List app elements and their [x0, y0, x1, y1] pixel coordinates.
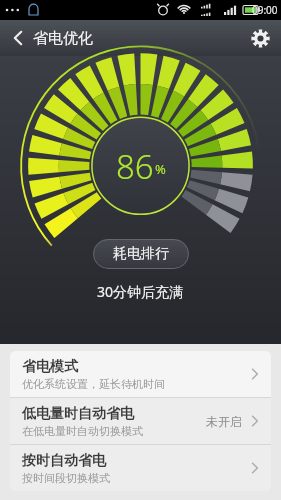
- staticText: 优化系统设置，延长待机时间: [22, 377, 165, 391]
- button[interactable]: 低电量时自动省电: [10, 398, 271, 444]
- staticText: 按时间段切换模式: [22, 471, 110, 485]
- staticText: 低电量时自动省电: [22, 405, 134, 423]
- staticText: 省电优化: [33, 29, 93, 48]
- staticText: 按时自动省电: [22, 452, 106, 470]
- staticText: 86: [116, 144, 154, 189]
- staticText: 耗电排行: [113, 245, 169, 263]
- staticText: 30分钟后充满: [97, 282, 184, 301]
- button[interactable]: 按时自动省电: [10, 445, 271, 491]
- staticText: 在低电量时自动切换模式: [22, 424, 143, 438]
- button[interactable]: Settings: [239, 20, 281, 56]
- staticText: 省电模式: [22, 358, 78, 376]
- button[interactable]: 耗电排行: [93, 239, 189, 269]
- button[interactable]: 省电模式: [10, 351, 271, 397]
- staticText: %: [155, 160, 166, 178]
- staticText: 09:00: [252, 3, 278, 17]
- staticText: 未开启: [206, 414, 242, 429]
- button[interactable]: Back: [0, 20, 36, 56]
